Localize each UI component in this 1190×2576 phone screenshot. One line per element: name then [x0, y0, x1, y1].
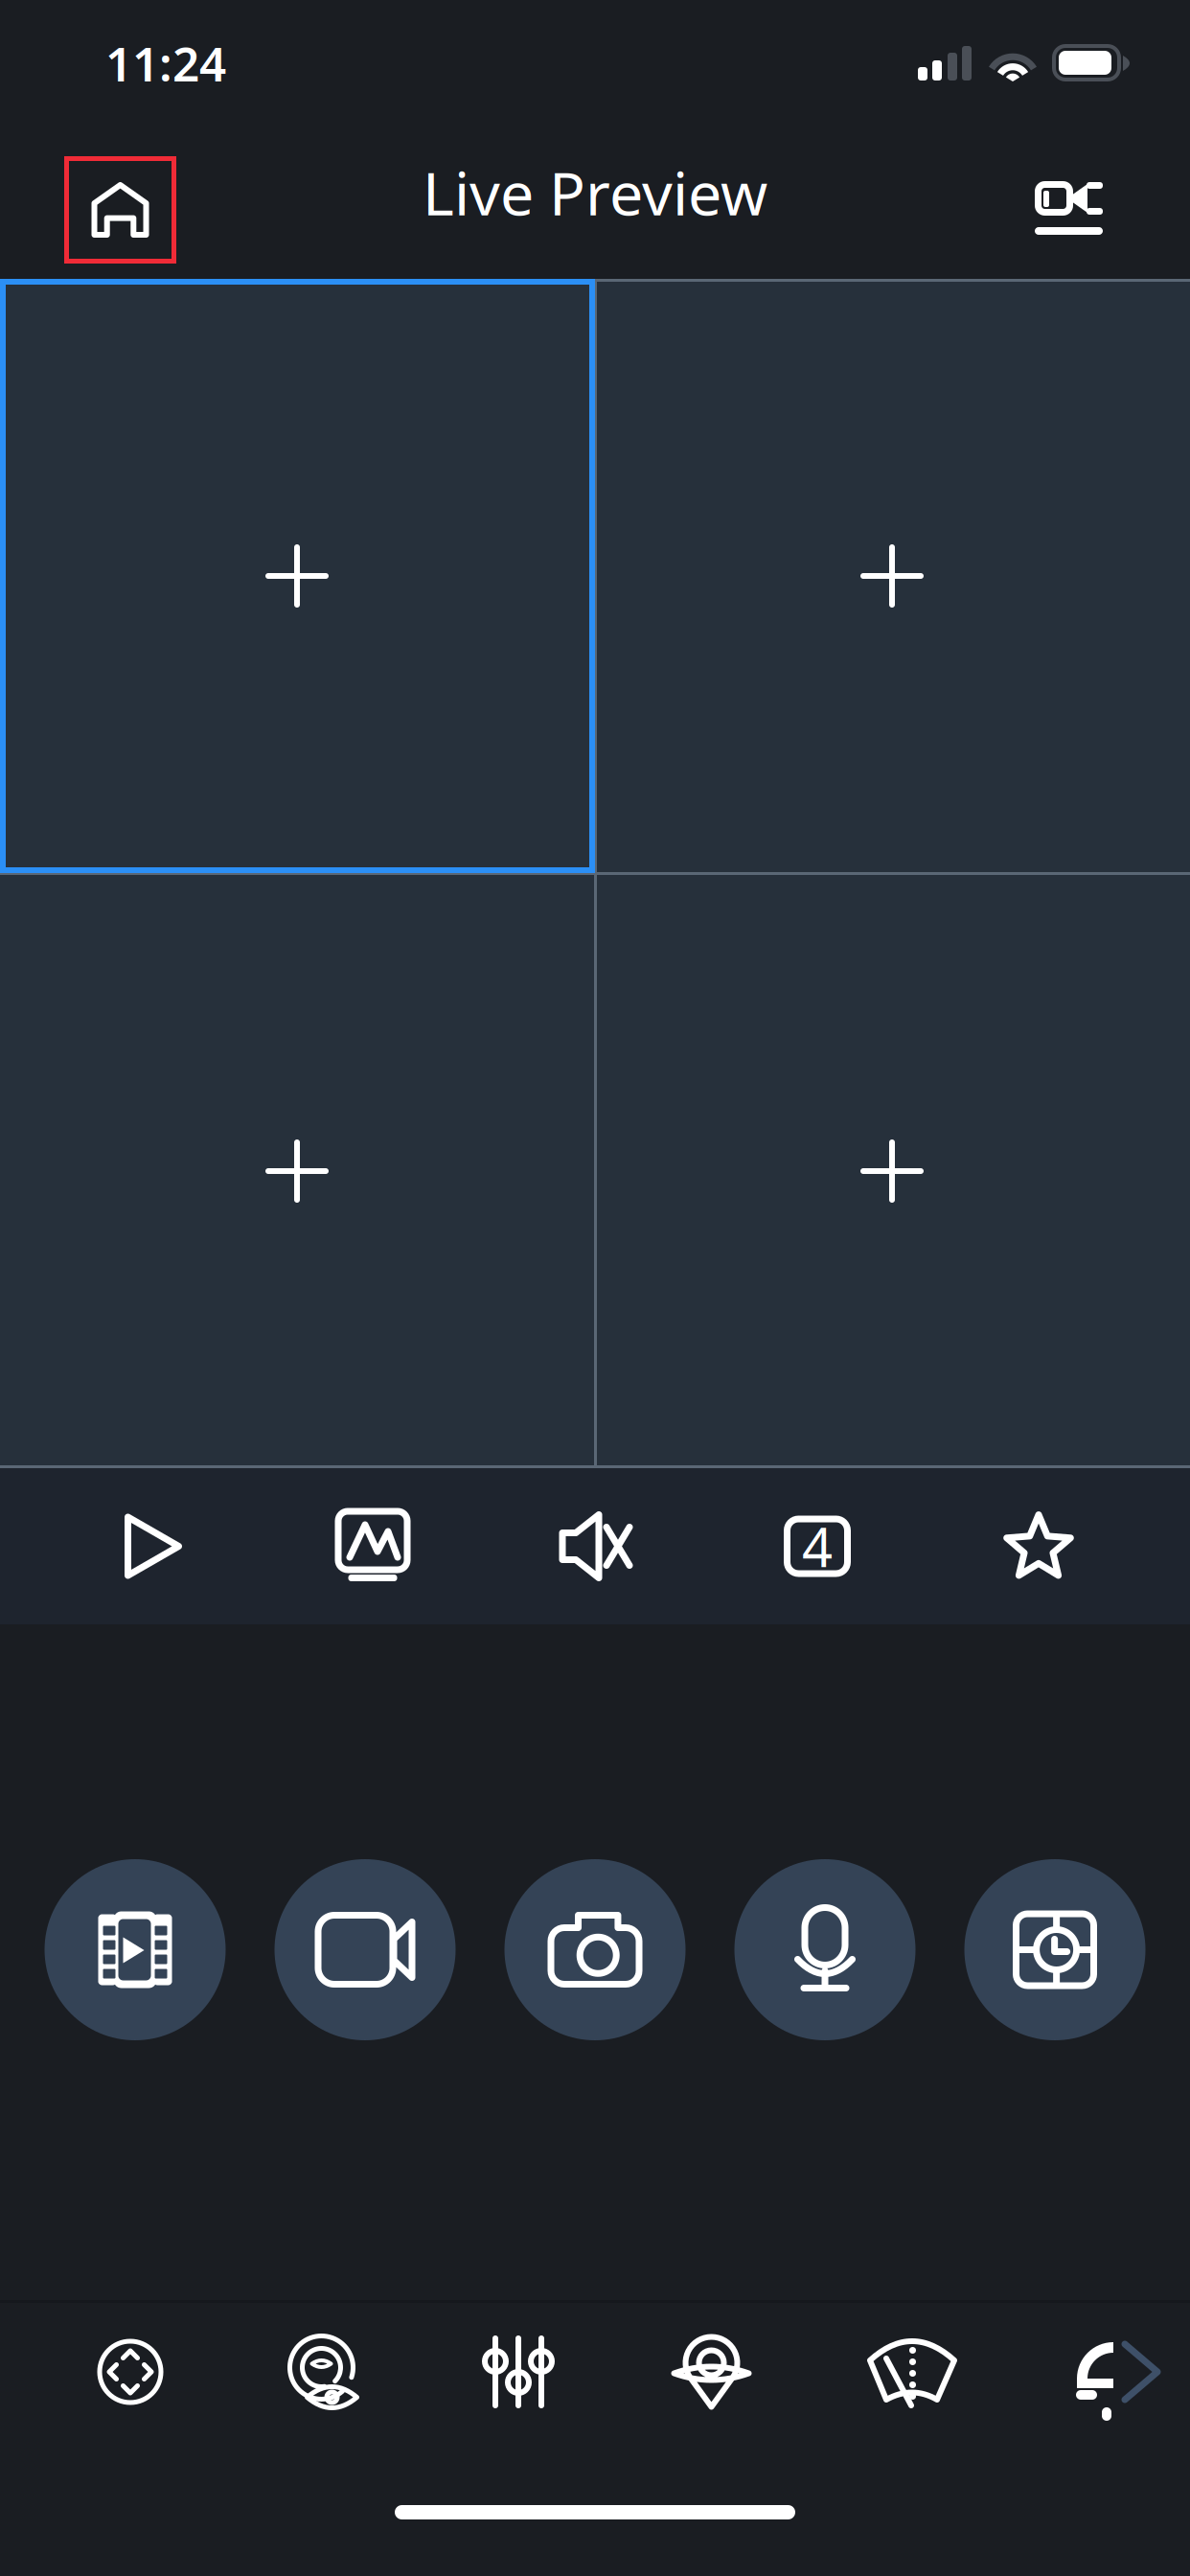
button[interactable]: Image settings: [446, 2300, 590, 2444]
button[interactable]: Privacy mask: [250, 2300, 394, 2444]
button[interactable]: Wiper: [840, 2300, 984, 2444]
button[interactable]: Talk: [734, 1859, 915, 2040]
button[interactable]: Clips: [45, 1859, 226, 2040]
button[interactable]: Infrared: [1020, 2300, 1164, 2444]
staticText: Live Preview: [423, 152, 767, 232]
button[interactable]: More controls: [1107, 2314, 1176, 2429]
button[interactable]: 4 cameras: [745, 1468, 889, 1624]
button[interactable]: Play: [81, 1468, 225, 1624]
button[interactable]: Home: [64, 156, 176, 264]
button[interactable]: Record: [275, 1859, 456, 2040]
button[interactable]: Pan and tilt: [58, 2300, 202, 2444]
button[interactable]: Mute: [524, 1468, 668, 1624]
button[interactable]: Favourite: [967, 1468, 1110, 1624]
button[interactable]: Snapshot: [301, 1468, 445, 1624]
button[interactable]: Snapshot: [504, 1859, 686, 2040]
button[interactable]: Timeline: [964, 1859, 1145, 2040]
staticText: 11:24: [105, 32, 226, 94]
button[interactable]: Position preset: [640, 2300, 784, 2444]
staticText: 4: [802, 1511, 833, 1582]
button[interactable]: Camera layout: [1010, 156, 1128, 260]
